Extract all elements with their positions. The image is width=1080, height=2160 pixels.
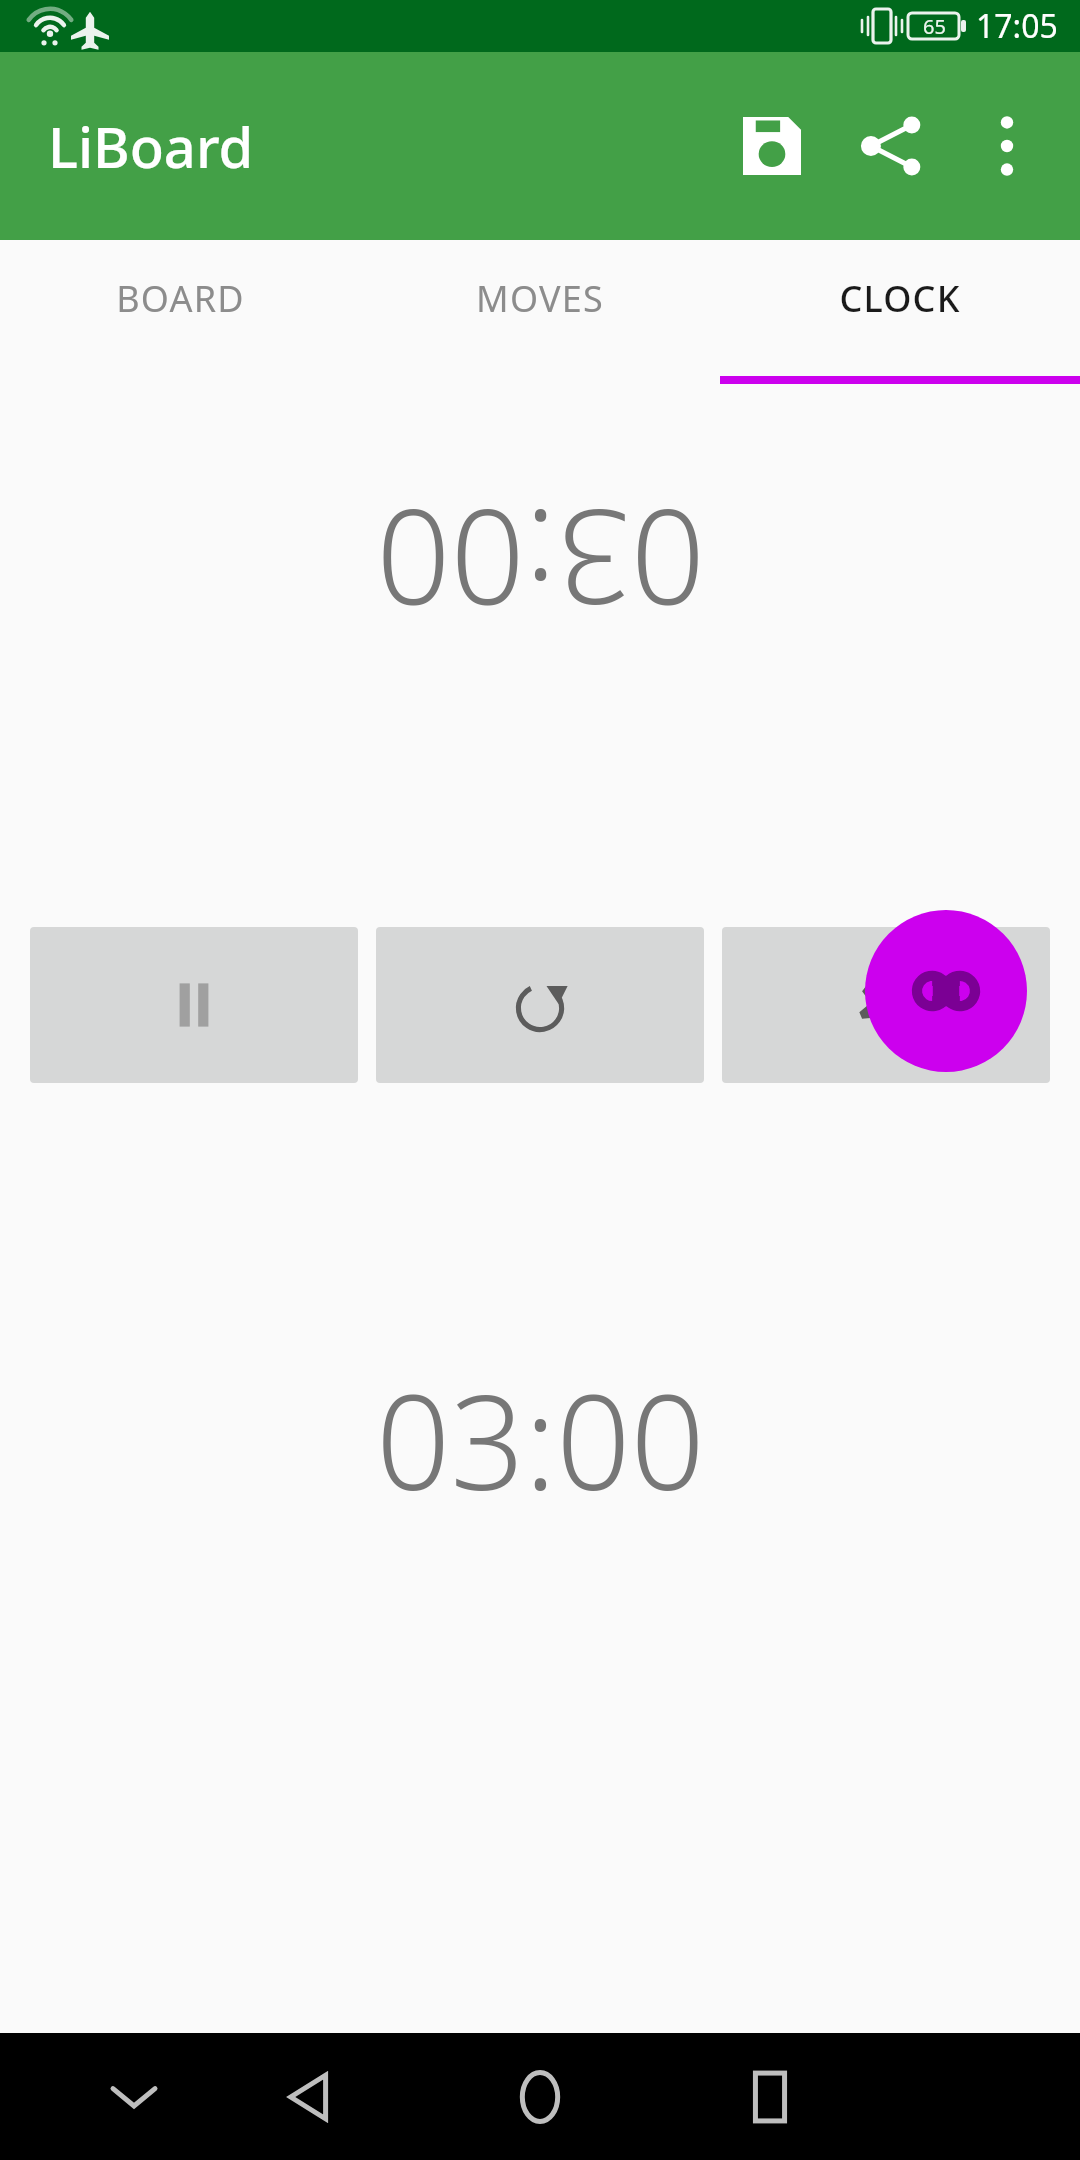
button[interactable]: Save: [712, 86, 832, 206]
staticText: BOARD: [116, 274, 245, 323]
button[interactable]: Reset: [376, 927, 704, 1083]
staticText: MOVES: [476, 274, 604, 323]
button[interactable]: More options: [952, 91, 1062, 201]
staticText: 17:05: [976, 4, 1058, 48]
staticText: LiBoard: [48, 108, 254, 184]
button[interactable]: Settings: [722, 927, 1050, 1083]
button[interactable]: Home: [475, 2033, 605, 2160]
button[interactable]: Back: [245, 2033, 375, 2160]
button[interactable]: MOVES: [360, 240, 720, 384]
button[interactable]: CLOCK: [720, 240, 1080, 384]
button[interactable]: Share: [832, 86, 952, 206]
button[interactable]: Hide keyboard: [74, 2037, 194, 2157]
button[interactable]: Link: [865, 910, 1027, 1072]
staticText: CLOCK: [839, 274, 961, 323]
staticText: 65: [923, 13, 946, 40]
button[interactable]: BOARD: [0, 240, 360, 384]
button[interactable]: Pause: [30, 927, 358, 1083]
staticText: 03:00: [376, 472, 705, 649]
button[interactable]: Recents: [705, 2033, 835, 2160]
staticText: 03:00: [376, 1351, 705, 1528]
